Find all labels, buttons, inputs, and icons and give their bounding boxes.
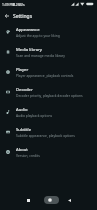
button[interactable]: Audio <box>0 101 97 120</box>
button[interactable]: Recents <box>21 191 35 209</box>
staticText: About <box>16 147 28 153</box>
button[interactable]: Back <box>2 11 11 20</box>
button[interactable]: Back <box>62 191 76 209</box>
staticText: Audio playback options <box>16 113 53 117</box>
staticText: Settings <box>13 13 33 20</box>
staticText: Subtitle appearance, playback options <box>16 133 75 137</box>
button[interactable]: Subtitle <box>0 121 97 140</box>
staticText: Version, credits <box>16 153 40 157</box>
staticText: Adjust the app to your liking <box>16 33 60 37</box>
staticText: 1:39 PM <box>2 2 15 6</box>
button[interactable]: Appearance <box>0 21 97 40</box>
staticText: 0.26B/s <box>13 2 25 6</box>
staticText: Audio <box>16 107 28 113</box>
button[interactable]: Player <box>0 61 97 80</box>
staticText: Player appearance, playback controls <box>16 73 74 77</box>
staticText: Media library <box>16 47 42 53</box>
staticText: Decoder priority, playback decoder optio… <box>16 93 83 97</box>
button[interactable]: Media library <box>0 41 97 60</box>
staticText: Scan and manage media library <box>16 53 65 57</box>
staticText: Appearance <box>16 27 40 33</box>
staticText: Decoder <box>16 87 33 93</box>
staticText: Subtitle <box>16 127 32 133</box>
button[interactable]: Home <box>44 196 59 204</box>
staticText: Player <box>16 67 29 73</box>
button[interactable]: About <box>0 141 97 160</box>
button[interactable]: Decoder <box>0 81 97 100</box>
